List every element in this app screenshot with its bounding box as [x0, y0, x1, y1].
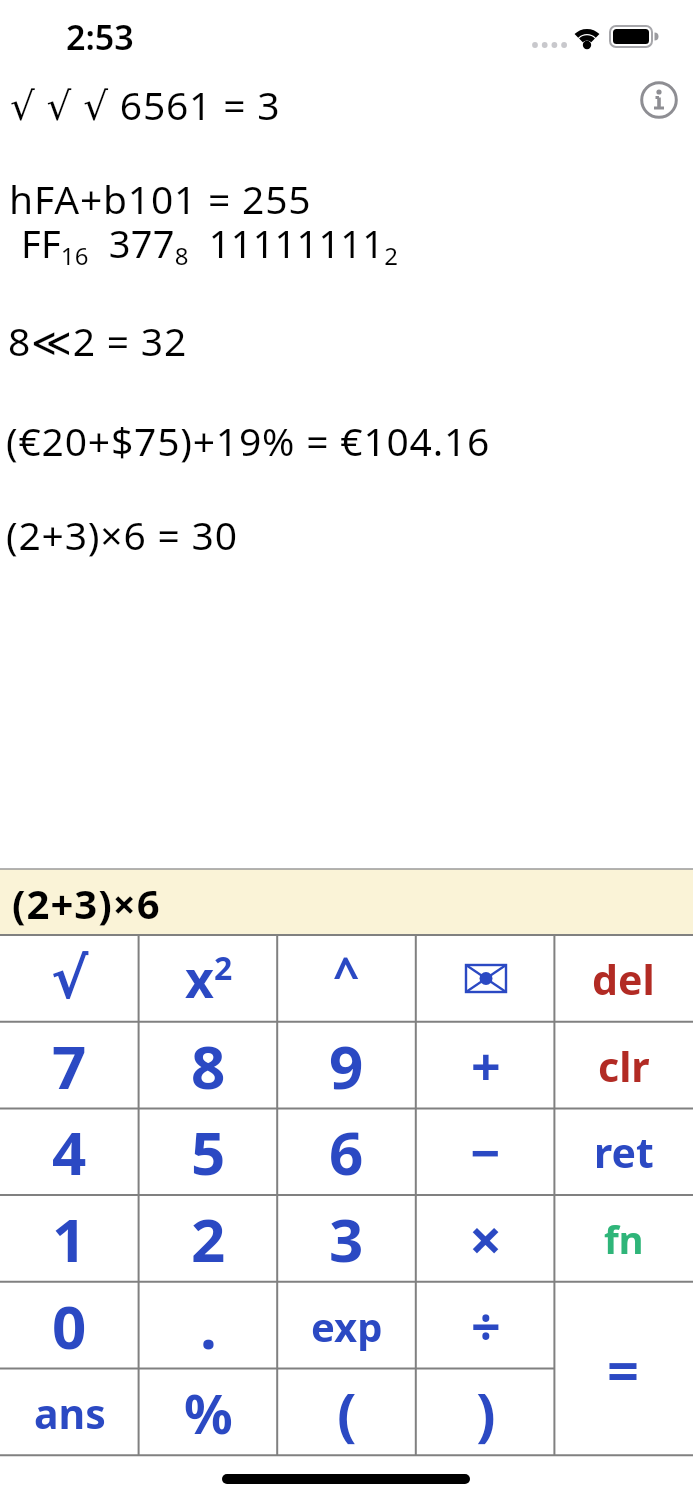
- staticText: √: [51, 946, 89, 1011]
- button[interactable]: %: [139, 1369, 278, 1456]
- staticText: +: [471, 1030, 501, 1101]
- button[interactable]: 5: [139, 1108, 278, 1195]
- staticText: ÷: [471, 1290, 501, 1361]
- button[interactable]: √: [0, 935, 139, 1022]
- staticText: 7: [52, 1025, 87, 1107]
- staticText: 0: [52, 1285, 87, 1367]
- button[interactable]: 1: [0, 1195, 139, 1282]
- button[interactable]: x2: [139, 935, 278, 1022]
- staticText: %: [184, 1376, 233, 1450]
- staticText: 8: [191, 1025, 226, 1107]
- button[interactable]: (: [277, 1369, 416, 1456]
- staticText: hFA+b101 = 255: [9, 172, 312, 225]
- staticText: (2+3)×6: [12, 876, 161, 930]
- button[interactable]: +: [416, 1022, 555, 1109]
- button[interactable]: [640, 81, 678, 119]
- staticText: fn: [604, 1213, 644, 1265]
- staticText: exp: [311, 1299, 383, 1353]
- button[interactable]: clr: [554, 1022, 693, 1109]
- button[interactable]: 9: [277, 1022, 416, 1109]
- staticText: 2: [191, 1198, 226, 1280]
- staticText: clr: [598, 1038, 650, 1094]
- staticText: 4: [52, 1111, 87, 1193]
- button[interactable]: ): [416, 1369, 555, 1456]
- button[interactable]: 6: [277, 1108, 416, 1195]
- staticText: 9: [329, 1025, 364, 1107]
- staticText: 5: [191, 1111, 226, 1193]
- button[interactable]: exp: [277, 1282, 416, 1369]
- staticText: 6: [329, 1111, 364, 1193]
- button[interactable]: 3: [277, 1195, 416, 1282]
- button[interactable]: 4: [0, 1108, 139, 1195]
- button[interactable]: −: [416, 1108, 555, 1195]
- staticText: (: [337, 1373, 357, 1452]
- button[interactable]: 2: [139, 1195, 278, 1282]
- staticText: √ √ √ 6561 = 3: [10, 78, 281, 131]
- staticText: ret: [594, 1124, 654, 1180]
- button[interactable]: ÷: [416, 1282, 555, 1369]
- button[interactable]: ans: [0, 1369, 139, 1456]
- button[interactable]: del: [554, 935, 693, 1022]
- staticText: ans: [34, 1385, 106, 1441]
- staticText: (2+3)×6 = 30: [6, 508, 238, 561]
- button[interactable]: ^: [277, 935, 416, 1022]
- staticText: ^: [333, 942, 360, 1005]
- staticText: 3: [329, 1198, 364, 1280]
- staticText: del: [592, 951, 655, 1007]
- button[interactable]: 8: [139, 1022, 278, 1109]
- button[interactable]: 7: [0, 1022, 139, 1109]
- staticText: 2:53: [66, 14, 134, 60]
- button[interactable]: fn: [554, 1195, 693, 1282]
- staticText: ): [476, 1373, 496, 1452]
- staticText: 1: [52, 1198, 87, 1280]
- button[interactable]: 0: [0, 1282, 139, 1369]
- staticText: .: [200, 1285, 217, 1367]
- staticText: =: [607, 1331, 640, 1407]
- button[interactable]: .: [139, 1282, 278, 1369]
- staticText: ×: [469, 1199, 503, 1278]
- button[interactable]: ret: [554, 1108, 693, 1195]
- staticText: −: [470, 1116, 501, 1187]
- button[interactable]: =: [554, 1282, 693, 1455]
- staticText: x2: [185, 945, 233, 1013]
- button[interactable]: [416, 935, 555, 1022]
- staticText: 8≪2 = 32: [8, 314, 188, 367]
- staticText: FF16 3778 111111112: [21, 217, 399, 272]
- button[interactable]: ×: [416, 1195, 555, 1282]
- staticText: (€20+$75)+19% = €104.16: [6, 414, 491, 467]
